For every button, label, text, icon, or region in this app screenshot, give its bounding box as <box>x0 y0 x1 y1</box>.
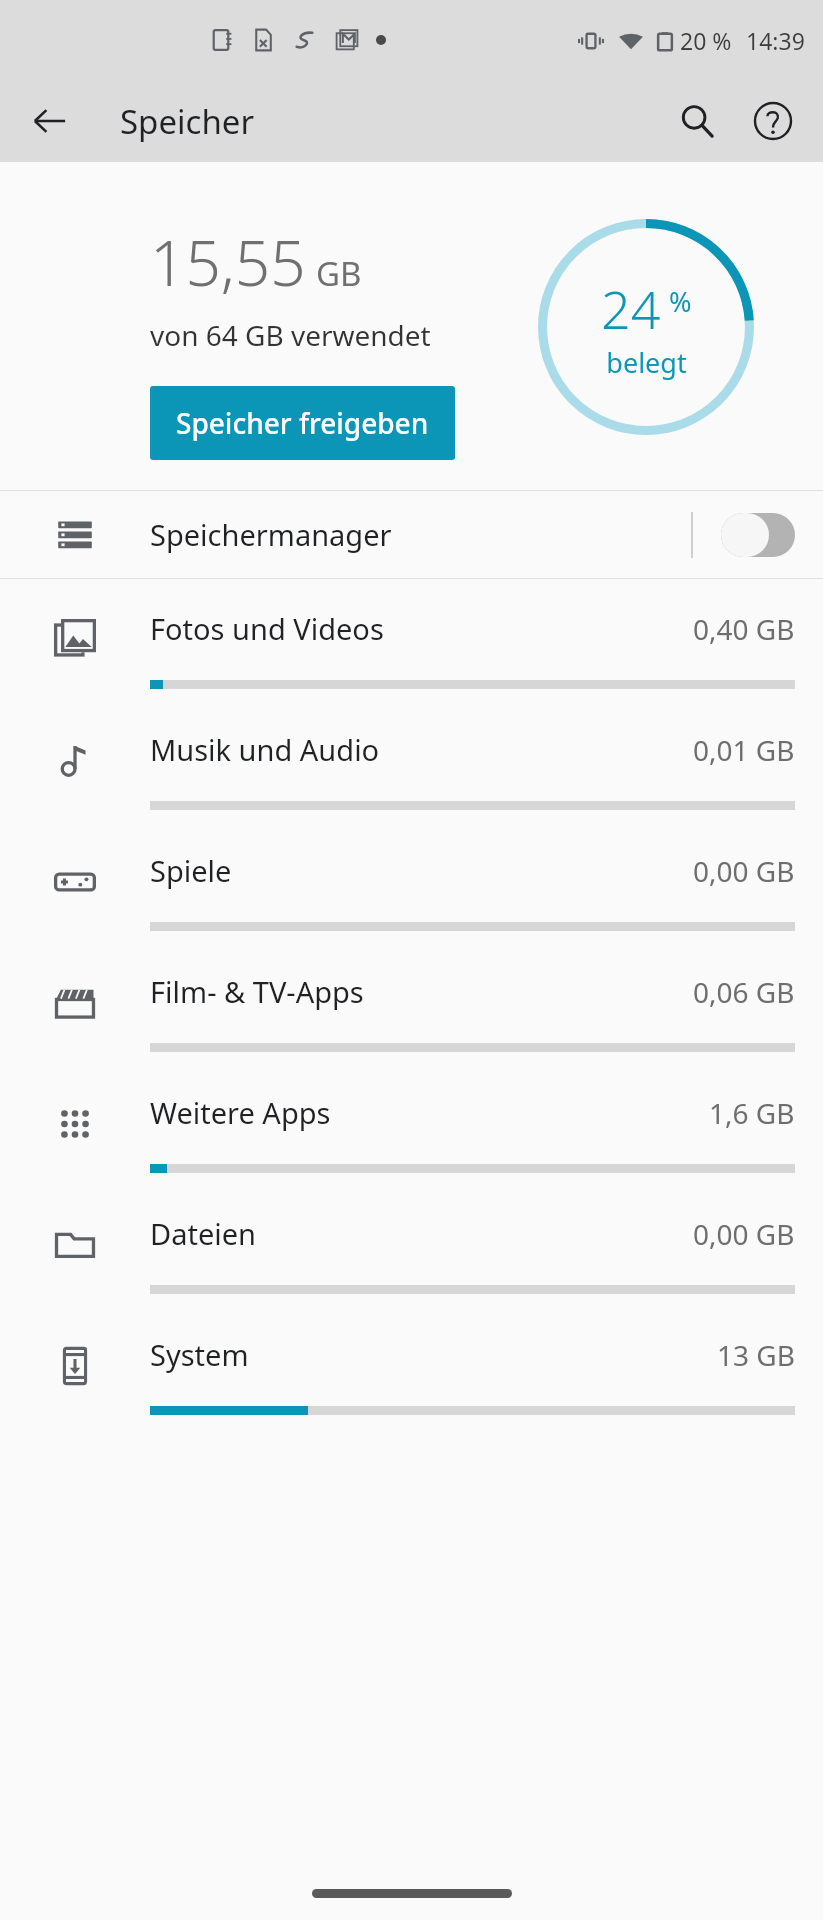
button[interactable]: Back <box>24 95 76 147</box>
button[interactable]: Film- & TV-Apps <box>0 942 823 1063</box>
staticText: System <box>150 1335 717 1374</box>
staticText: 0,40 GB <box>693 610 795 648</box>
staticText: 0,01 GB <box>693 731 795 769</box>
button[interactable]: Help <box>743 91 803 151</box>
staticText: GB <box>316 251 362 296</box>
staticText: Spiele <box>150 851 693 890</box>
staticText: Speichermanager <box>150 515 691 554</box>
button[interactable]: Speicher freigeben <box>150 386 455 460</box>
staticText: Musik und Audio <box>150 730 693 769</box>
staticText: Film- & TV-Apps <box>150 972 693 1011</box>
button[interactable]: Weitere Apps <box>0 1063 823 1184</box>
staticText: 0,06 GB <box>693 973 795 1011</box>
button[interactable]: Spiele <box>0 821 823 942</box>
staticText: Dateien <box>150 1214 693 1253</box>
staticText: 13 GB <box>717 1336 795 1374</box>
staticText: Speicher freigeben <box>176 404 429 442</box>
staticText: 0,00 GB <box>693 852 795 890</box>
button[interactable]: Fotos und Videos <box>0 579 823 700</box>
staticText: 14:39 <box>746 25 805 56</box>
staticText: Fotos und Videos <box>150 609 693 648</box>
button[interactable]: Search <box>667 91 727 151</box>
staticText: Speicher <box>120 99 255 144</box>
staticText: 15,55 <box>150 220 306 304</box>
button[interactable]: System <box>0 1305 823 1426</box>
staticText: 24 <box>601 273 661 344</box>
button[interactable]: Musik und Audio <box>0 700 823 821</box>
staticText: 20 % <box>680 25 732 56</box>
staticText: belegt <box>606 344 687 381</box>
button[interactable]: Dateien <box>0 1184 823 1305</box>
staticText: % <box>669 283 692 320</box>
staticText: 0,00 GB <box>693 1215 795 1253</box>
button[interactable]: Speichermanager <box>0 491 823 578</box>
staticText: 1,6 GB <box>709 1094 795 1132</box>
button[interactable]: Speichermanager toggle <box>693 491 823 578</box>
staticText: Weitere Apps <box>150 1093 709 1132</box>
staticText: von 64 GB verwendet <box>150 316 431 354</box>
